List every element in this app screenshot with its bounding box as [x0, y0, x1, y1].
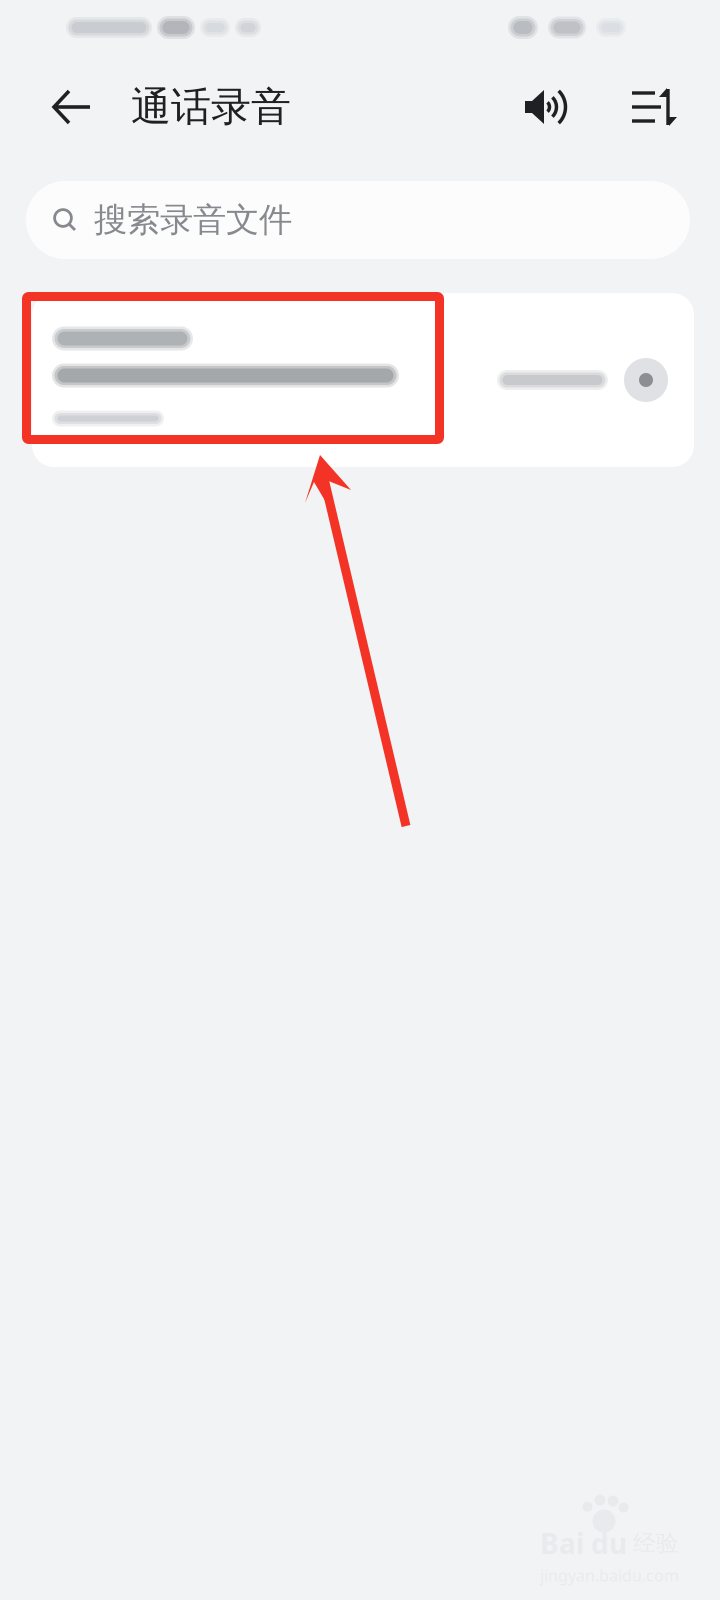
button[interactable]	[32, 293, 694, 467]
button[interactable]: Back	[33, 63, 111, 151]
staticText: 搜索录音文件	[94, 199, 292, 240]
button[interactable]: Sort	[622, 63, 686, 151]
button[interactable]: Speaker	[514, 63, 580, 151]
staticText: 通话录音	[131, 82, 291, 131]
staticText: 经验	[633, 1529, 679, 1557]
staticText: Bai du	[540, 1525, 627, 1562]
button[interactable]: 搜索录音文件	[26, 181, 690, 259]
